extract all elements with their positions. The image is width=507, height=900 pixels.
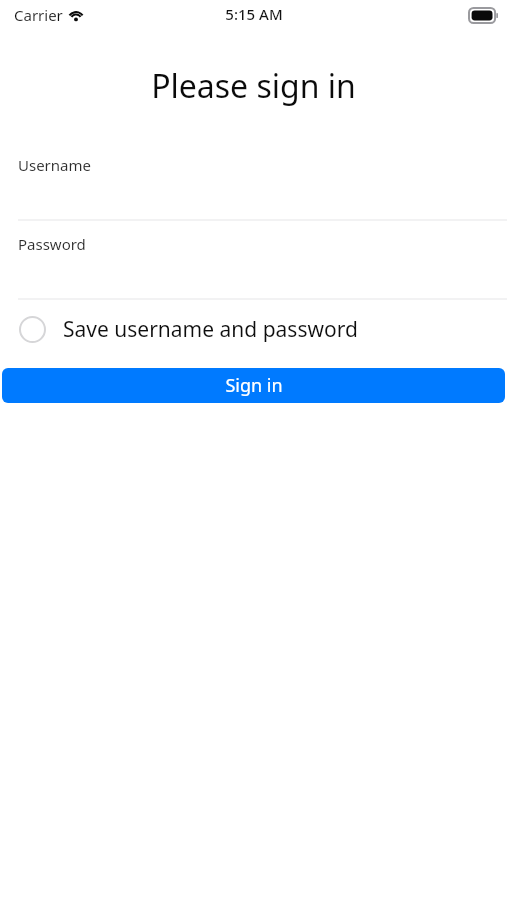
staticText: 5:15 AM [225, 4, 283, 24]
button[interactable]: Sign in [2, 368, 505, 403]
staticText: Carrier [14, 5, 63, 25]
staticText: Password [18, 234, 86, 254]
button[interactable]: Password [0, 232, 507, 300]
staticText: Username [18, 155, 91, 175]
staticText: Sign in [225, 373, 283, 398]
other: Battery full [469, 8, 498, 23]
button[interactable]: Username [0, 153, 507, 221]
staticText: Save username and password [63, 315, 358, 344]
staticText: Please sign in [0, 64, 507, 108]
button[interactable]: Save username and password [0, 300, 507, 358]
